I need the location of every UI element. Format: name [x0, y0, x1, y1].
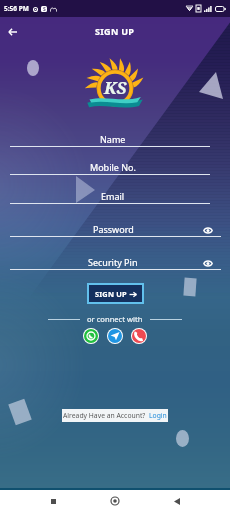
- button[interactable]: Mobile No.: [0, 159, 230, 176]
- staticText: Security Pin: [88, 256, 138, 268]
- staticText: 5:56 PM: [4, 4, 29, 13]
- staticText: S: [43, 6, 46, 12]
- staticText: Password: [93, 223, 134, 235]
- button[interactable]: Show Security Pin: [200, 256, 215, 271]
- button[interactable]: Recents: [44, 492, 62, 510]
- button[interactable]: Email: [0, 188, 230, 205]
- button[interactable]: Telegram: [108, 329, 122, 343]
- button[interactable]: Back: [3, 22, 22, 41]
- staticText: SIGN UP: [95, 289, 127, 299]
- staticText: Mobile No.: [90, 161, 136, 173]
- button[interactable]: Home: [106, 492, 124, 510]
- staticText: Already Have an Account?: [63, 411, 146, 420]
- button[interactable]: WhatsApp: [84, 329, 98, 343]
- button[interactable]: Call: [132, 329, 146, 343]
- staticText: Name: [100, 133, 126, 145]
- button[interactable]: SIGN UP: [87, 283, 144, 304]
- staticText: KS: [104, 76, 127, 99]
- staticText: Login: [149, 411, 167, 420]
- staticText: Email: [101, 190, 125, 202]
- button[interactable]: Show Password: [200, 223, 215, 238]
- button[interactable]: Password: [0, 221, 230, 238]
- button[interactable]: Name: [0, 131, 230, 148]
- button[interactable]: Back: [168, 492, 186, 510]
- staticText: SIGN UP: [95, 25, 135, 37]
- staticText: or connect with: [87, 314, 143, 324]
- button[interactable]: Already Have an Account?: [62, 409, 168, 422]
- button[interactable]: Security Pin: [0, 254, 230, 271]
